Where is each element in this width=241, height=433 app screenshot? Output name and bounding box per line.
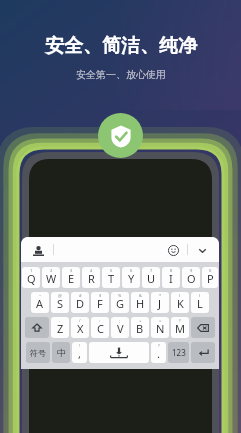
button[interactable]: 123: [168, 342, 189, 363]
button[interactable]: 2: [42, 267, 60, 288]
staticText: V: [117, 321, 124, 336]
staticText: 中: [57, 347, 66, 358]
staticText: F: [97, 296, 103, 311]
button[interactable]: 7: [142, 267, 160, 288]
button[interactable]: %: [111, 292, 129, 313]
staticText: T: [108, 271, 115, 286]
button[interactable]: @: [51, 292, 69, 313]
staticText: S: [57, 296, 64, 311]
button[interactable]: 6: [122, 267, 140, 288]
staticText: 2: [50, 268, 53, 273]
staticText: ;: [119, 318, 121, 323]
staticText: Q: [27, 271, 36, 286]
staticText: B: [136, 321, 144, 336]
button[interactable]: -: [51, 317, 69, 338]
staticText: ,: [78, 346, 81, 361]
button[interactable]: Emoji: [164, 241, 182, 259]
button[interactable]: 5: [102, 267, 120, 288]
staticText: 1: [30, 268, 33, 273]
staticText: M: [175, 321, 185, 336]
staticText: 123: [172, 347, 186, 358]
button[interactable]: *: [151, 292, 169, 313]
button[interactable]: 3: [62, 267, 80, 288]
staticText: P: [207, 271, 214, 286]
button[interactable]: ;: [111, 317, 129, 338]
staticText: 8: [170, 268, 173, 273]
staticText: X: [77, 321, 84, 336]
button[interactable]: 0: [202, 267, 218, 288]
staticText: O: [187, 271, 196, 286]
button[interactable]: Input method: [29, 241, 47, 259]
staticText: K: [177, 296, 184, 311]
button[interactable]: 符号: [26, 342, 50, 363]
staticText: L: [197, 296, 203, 311]
button[interactable]: ~: [31, 292, 49, 313]
button[interactable]: Security verified: [98, 113, 143, 158]
staticText: 6: [130, 268, 133, 273]
staticText: $: [99, 293, 102, 298]
button[interactable]: [25, 317, 49, 338]
staticText: (: [179, 293, 181, 298]
staticText: G: [116, 296, 125, 311]
staticText: =: [159, 318, 162, 323]
staticText: C: [97, 321, 104, 336]
button[interactable]: #: [71, 292, 89, 313]
staticText: I: [169, 271, 173, 286]
staticText: U: [147, 271, 156, 286]
staticText: ): [199, 293, 201, 298]
button[interactable]: Space, voice input: [89, 342, 149, 363]
staticText: +: [139, 318, 142, 323]
button[interactable]: 9: [182, 267, 200, 288]
button[interactable]: +: [131, 317, 149, 338]
staticText: :: [99, 318, 101, 323]
staticText: 安全第一、放心使用: [76, 68, 166, 81]
staticText: 7: [150, 268, 153, 273]
button[interactable]: !: [72, 342, 87, 363]
staticText: .: [157, 346, 160, 361]
button[interactable]: :: [91, 317, 109, 338]
button[interactable]: ?: [151, 342, 166, 363]
staticText: N: [156, 321, 165, 336]
button[interactable]: /: [71, 317, 89, 338]
button[interactable]: [191, 342, 215, 363]
staticText: 0: [209, 268, 212, 273]
staticText: J: [158, 296, 162, 311]
staticText: Z: [57, 321, 64, 336]
button[interactable]: &: [131, 292, 149, 313]
staticText: D: [76, 296, 85, 311]
button[interactable]: [191, 317, 215, 338]
button[interactable]: 4: [82, 267, 100, 288]
button[interactable]: ): [191, 292, 209, 313]
staticText: %: [118, 293, 122, 298]
staticText: 4: [90, 268, 93, 273]
staticText: &: [139, 293, 142, 298]
staticText: A: [36, 296, 44, 311]
staticText: 3: [70, 268, 73, 273]
staticText: ?: [158, 343, 160, 348]
staticText: E: [68, 271, 75, 286]
staticText: 9: [190, 268, 193, 273]
staticText: Y: [128, 271, 135, 286]
staticText: -: [59, 318, 61, 323]
staticText: /: [79, 318, 81, 323]
staticText: @: [58, 293, 62, 298]
button[interactable]: $: [91, 292, 109, 313]
staticText: #: [79, 293, 82, 298]
button[interactable]: 中: [52, 342, 70, 363]
button[interactable]: =: [151, 317, 169, 338]
staticText: H: [136, 296, 145, 311]
staticText: ~: [39, 293, 42, 298]
staticText: 5: [110, 268, 113, 273]
button[interactable]: Hide keyboard: [193, 241, 211, 259]
staticText: !: [79, 343, 81, 348]
staticText: ?: [179, 318, 181, 323]
staticText: *: [159, 293, 162, 298]
button[interactable]: ?: [171, 317, 189, 338]
button[interactable]: (: [171, 292, 189, 313]
staticText: 符号: [30, 348, 46, 358]
staticText: 安全、简洁、纯净: [45, 34, 197, 58]
button[interactable]: 1: [22, 267, 40, 288]
staticText: W: [46, 271, 57, 286]
button[interactable]: 8: [162, 267, 180, 288]
staticText: R: [88, 271, 95, 286]
